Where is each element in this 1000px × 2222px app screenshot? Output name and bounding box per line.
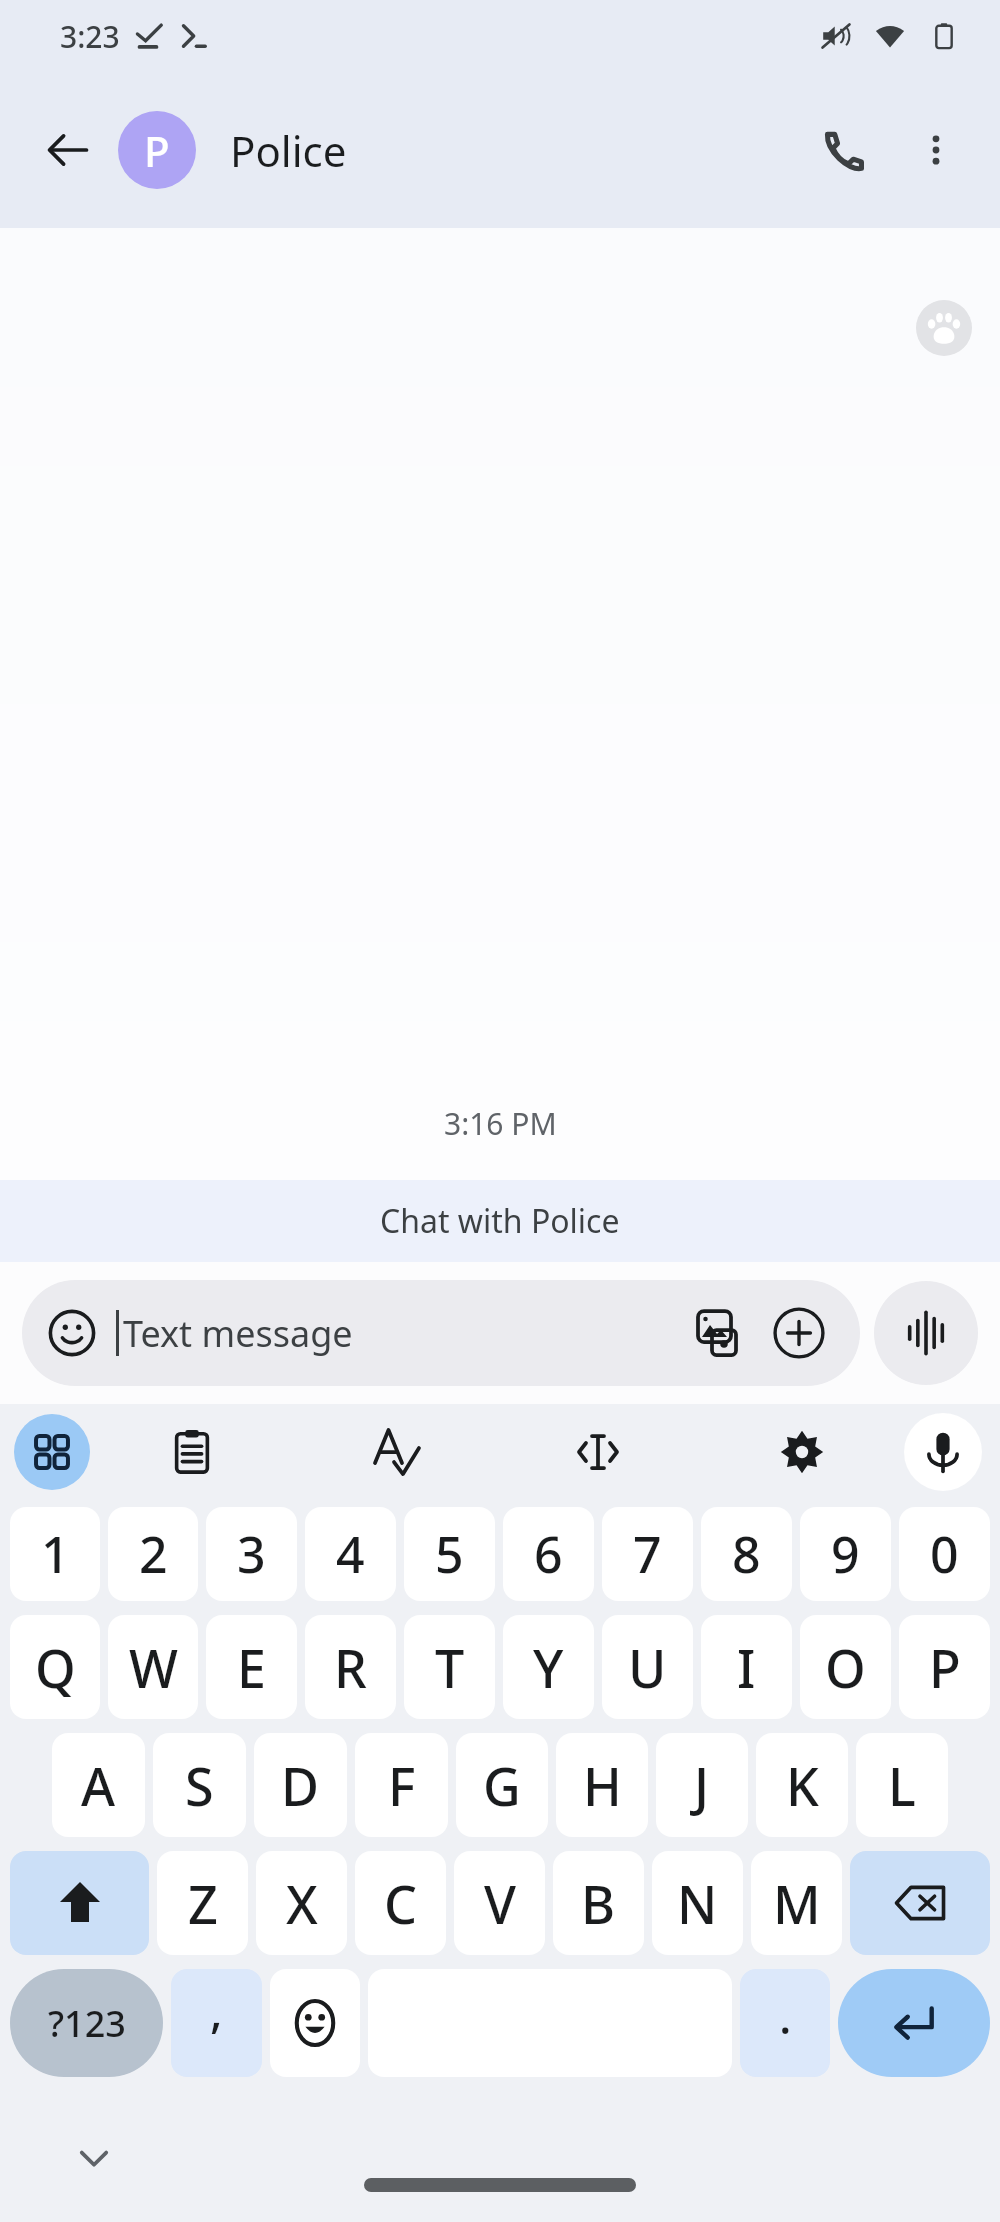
button[interactable]: R [305,1615,396,1719]
staticText: 3:23 [60,16,120,57]
button[interactable]: A [52,1733,145,1837]
staticText: U [628,1632,667,1703]
button[interactable]: Z [157,1851,248,1955]
staticText: Y [533,1632,564,1703]
staticText: T [435,1632,465,1703]
button[interactable]: Chat with Police [0,1180,1000,1262]
staticText: 7 [633,1520,662,1588]
staticText: Q [35,1632,76,1703]
button[interactable]: Text message [22,1280,860,1386]
staticText: , [210,1979,223,2042]
button[interactable]: Call [796,102,892,198]
staticText: 3:16 PM [444,1103,557,1144]
staticText: I [737,1632,756,1703]
button[interactable]: Keyboard action [90,1404,293,1500]
button[interactable]: 5 [404,1507,495,1601]
staticText: W [129,1632,178,1703]
staticText: . [779,1985,792,2048]
staticText: G [483,1750,521,1821]
button[interactable]: Period [740,1969,830,2077]
button[interactable]: N [652,1851,743,1955]
button[interactable]: G [456,1733,548,1837]
staticText: D [281,1750,320,1821]
staticText: 4 [336,1520,365,1588]
staticText: 9 [831,1520,860,1588]
button[interactable]: 2 [108,1507,198,1601]
button[interactable]: Back [26,108,110,192]
button[interactable]: 8 [701,1507,792,1601]
button[interactable]: P [899,1615,990,1719]
button[interactable]: Hide keyboard [62,2126,126,2190]
staticText: P [144,122,170,179]
staticText: 2 [139,1520,168,1588]
staticText: Z [188,1868,218,1939]
button[interactable]: W [108,1615,198,1719]
staticText: B [581,1868,616,1939]
button[interactable]: Voice input [904,1413,982,1491]
staticText: ?123 [48,1999,126,2048]
button[interactable]: 6 [503,1507,594,1601]
button[interactable]: S [153,1733,246,1837]
button[interactable]: Gallery [682,1298,752,1368]
staticText: X [286,1868,318,1939]
button[interactable]: Comma [171,1969,262,2077]
staticText: 8 [732,1520,761,1588]
button[interactable]: 9 [800,1507,891,1601]
staticText: 3 [237,1520,266,1588]
staticText: S [185,1750,214,1821]
button[interactable]: Keyboard action [700,1404,904,1500]
button[interactable]: Keyboard tools [14,1414,90,1490]
staticText: M [773,1868,821,1939]
staticText: F [388,1750,416,1821]
button[interactable]: X [256,1851,347,1955]
button[interactable]: Emoji [270,1969,360,2077]
staticText: E [237,1632,266,1703]
button[interactable]: F [355,1733,448,1837]
button[interactable]: 0 [899,1507,990,1601]
button[interactable]: Backspace [850,1851,990,1955]
button[interactable]: H [556,1733,648,1837]
button[interactable]: 7 [602,1507,693,1601]
button[interactable]: T [404,1615,495,1719]
staticText: N [677,1868,718,1939]
button[interactable]: Shift [10,1851,149,1955]
button[interactable]: E [206,1615,297,1719]
button[interactable]: Attach [764,1298,834,1368]
button[interactable]: 4 [305,1507,396,1601]
button[interactable]: 3 [206,1507,297,1601]
button[interactable]: Symbols [10,1969,163,2077]
button[interactable]: O [800,1615,891,1719]
button[interactable]: I [701,1615,792,1719]
button[interactable]: U [602,1615,693,1719]
staticText: C [384,1868,418,1939]
button[interactable]: M [751,1851,842,1955]
staticText: 6 [534,1520,563,1588]
staticText: 0 [930,1520,959,1588]
button[interactable]: Voice message [874,1281,978,1385]
staticText: L [888,1750,916,1821]
button[interactable]: Y [503,1615,594,1719]
button[interactable]: J [656,1733,748,1837]
staticText: R [334,1632,367,1703]
button[interactable]: Keyboard action [496,1404,700,1500]
button[interactable]: Keyboard action [293,1404,496,1500]
button[interactable]: 1 [10,1507,100,1601]
button[interactable]: V [454,1851,545,1955]
staticText: 1 [41,1520,70,1588]
staticText: V [484,1868,516,1939]
staticText: J [694,1750,710,1821]
button[interactable]: More options [892,106,980,194]
button[interactable]: Q [10,1615,100,1719]
button[interactable]: C [355,1851,446,1955]
button[interactable]: P [118,90,796,210]
button[interactable]: D [254,1733,347,1837]
button[interactable]: Enter [838,1969,990,2077]
button[interactable]: L [856,1733,948,1837]
button[interactable]: B [553,1851,644,1955]
staticText: K [786,1750,819,1821]
staticText: 5 [435,1520,464,1588]
staticText: H [583,1750,622,1821]
staticText: O [825,1632,866,1703]
button[interactable]: K [756,1733,848,1837]
